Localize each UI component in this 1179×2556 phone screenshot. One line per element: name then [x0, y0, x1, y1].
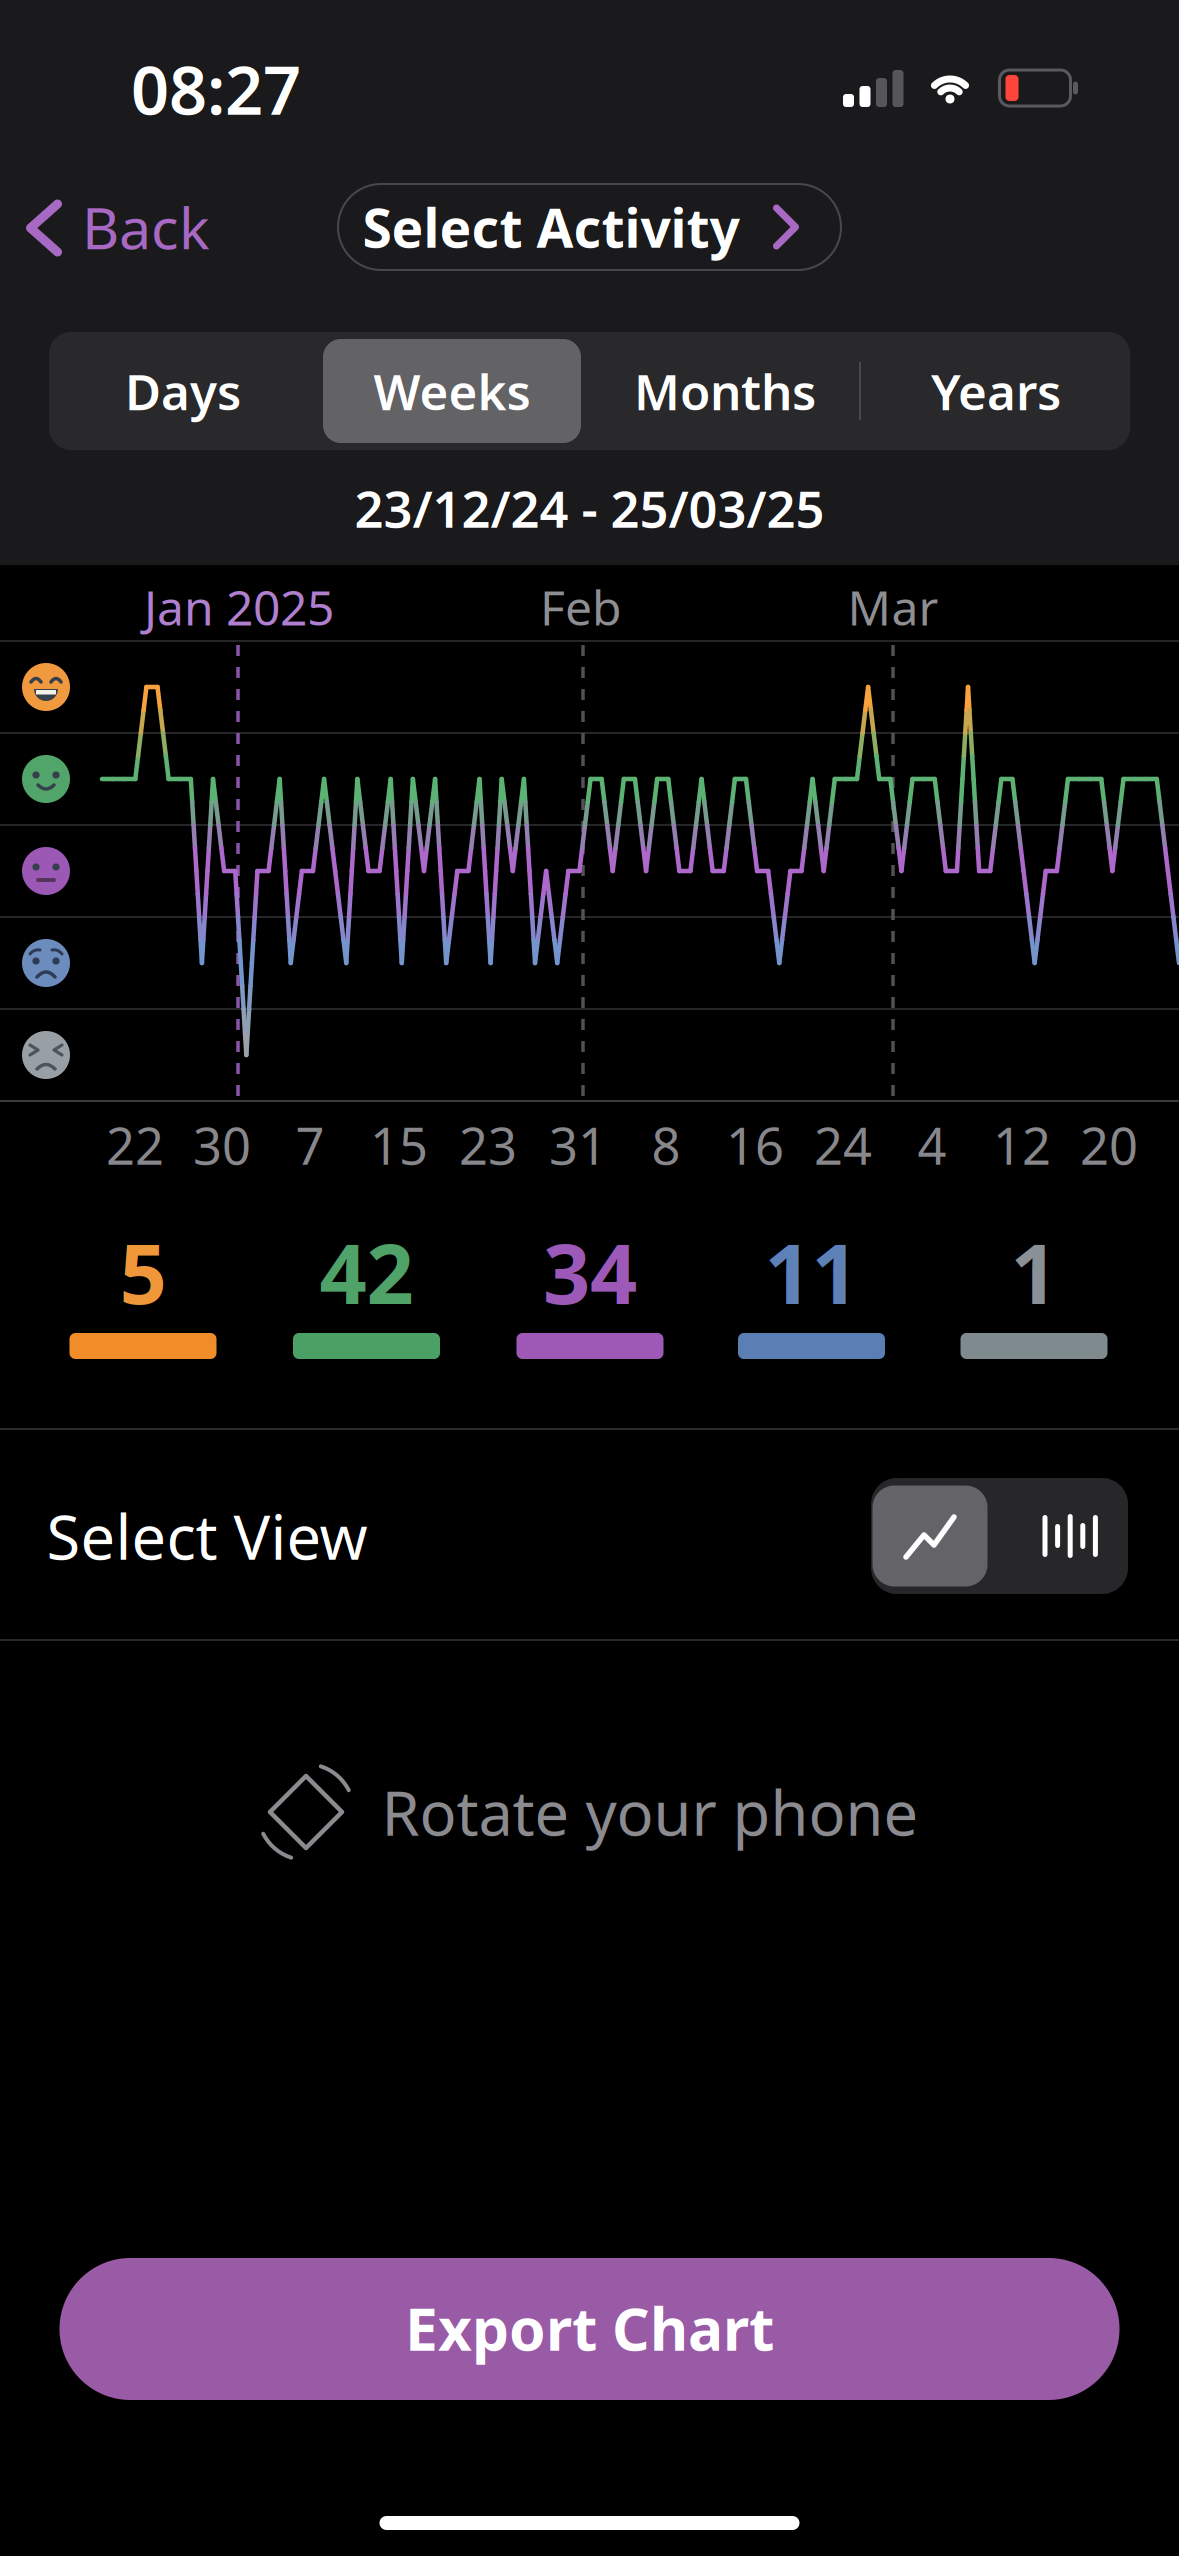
staticText: Back [82, 189, 210, 265]
staticText: 31 [549, 1111, 607, 1179]
staticText: 4 [917, 1111, 946, 1179]
staticText: 23/12/24 - 25/03/25 [354, 474, 824, 542]
staticText: 20 [1080, 1111, 1138, 1179]
staticText: 24 [814, 1111, 872, 1179]
staticText: Months [634, 358, 816, 424]
staticText: Jan 2025 [144, 575, 334, 639]
staticText: Weeks [373, 358, 530, 424]
staticText: 11 [764, 1217, 858, 1327]
staticText: Mar [847, 575, 938, 639]
staticText: 7 [295, 1111, 324, 1179]
staticText: Feb [540, 575, 622, 639]
staticText: 1 [1010, 1217, 1057, 1327]
staticText: 5 [119, 1217, 166, 1327]
staticText: Days [125, 358, 241, 424]
staticText: Select Activity [362, 192, 739, 262]
staticText: 22 [106, 1111, 164, 1179]
staticText: 08:27 [131, 45, 301, 133]
staticText: Select View [46, 1495, 367, 1577]
staticText: Years [931, 358, 1061, 424]
staticText: Export Chart [405, 2289, 774, 2367]
staticText: 23 [459, 1111, 517, 1179]
staticText: 12 [993, 1111, 1051, 1179]
staticText: 42 [319, 1217, 413, 1327]
staticText: Rotate your phone [381, 1771, 918, 1853]
staticText: 30 [193, 1111, 251, 1179]
staticText: 34 [543, 1217, 637, 1327]
staticText: 8 [651, 1111, 680, 1179]
staticText: 15 [370, 1111, 428, 1179]
staticText: 16 [726, 1111, 784, 1179]
